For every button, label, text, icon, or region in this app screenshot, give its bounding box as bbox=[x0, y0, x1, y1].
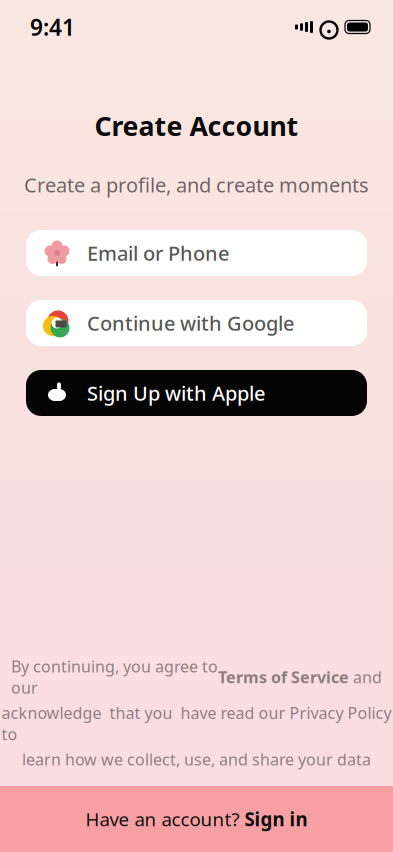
staticText: Have an account? bbox=[85, 807, 244, 831]
staticText: Sign in bbox=[244, 807, 307, 831]
staticText: Sign Up with Apple bbox=[87, 380, 265, 406]
button[interactable]: Email or Phone bbox=[26, 230, 367, 276]
button[interactable]: Sign Up with Apple bbox=[26, 370, 367, 416]
staticText: and bbox=[349, 666, 382, 688]
staticText: Terms of Service bbox=[218, 666, 349, 688]
staticText: Email or Phone bbox=[87, 240, 229, 266]
button[interactable]: Continue with Google bbox=[26, 300, 367, 346]
button[interactable]: Have an account? bbox=[0, 786, 393, 852]
staticText: acknowledge that you have read our Priva… bbox=[1, 702, 391, 745]
staticText: Create a profile, and create moments bbox=[24, 171, 369, 198]
staticText: 9:41 bbox=[30, 12, 75, 42]
staticText: Continue with Google bbox=[87, 310, 294, 336]
staticText: Create Account bbox=[94, 108, 298, 143]
staticText: learn how we collect, use, and share you… bbox=[22, 749, 371, 770]
staticText: By continuing, you agree to our bbox=[11, 656, 218, 698]
